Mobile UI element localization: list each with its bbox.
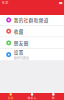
staticText: 我	[52, 96, 55, 100]
staticText: 9:41	[2, 1, 8, 5]
staticText: 联系人	[27, 96, 36, 100]
button[interactable]: 朋友圈	[0, 37, 64, 48]
button[interactable]: 我的社群和频道	[0, 15, 64, 25]
staticText: 账号与安全	[14, 55, 29, 60]
button[interactable]: 设置	[0, 49, 64, 60]
staticText: 收藏	[14, 28, 24, 34]
staticText: 朋友圈	[14, 40, 29, 46]
button[interactable]: 我	[43, 93, 64, 100]
staticText: 消息	[8, 96, 14, 100]
staticText: 设置	[14, 49, 24, 55]
button[interactable]: 收藏	[0, 26, 64, 37]
staticText: ▮▮▮	[59, 1, 62, 4]
button[interactable]: 消息	[0, 93, 21, 100]
staticText: 我的社群和频道	[14, 17, 49, 23]
button[interactable]: 联系人	[21, 93, 43, 100]
